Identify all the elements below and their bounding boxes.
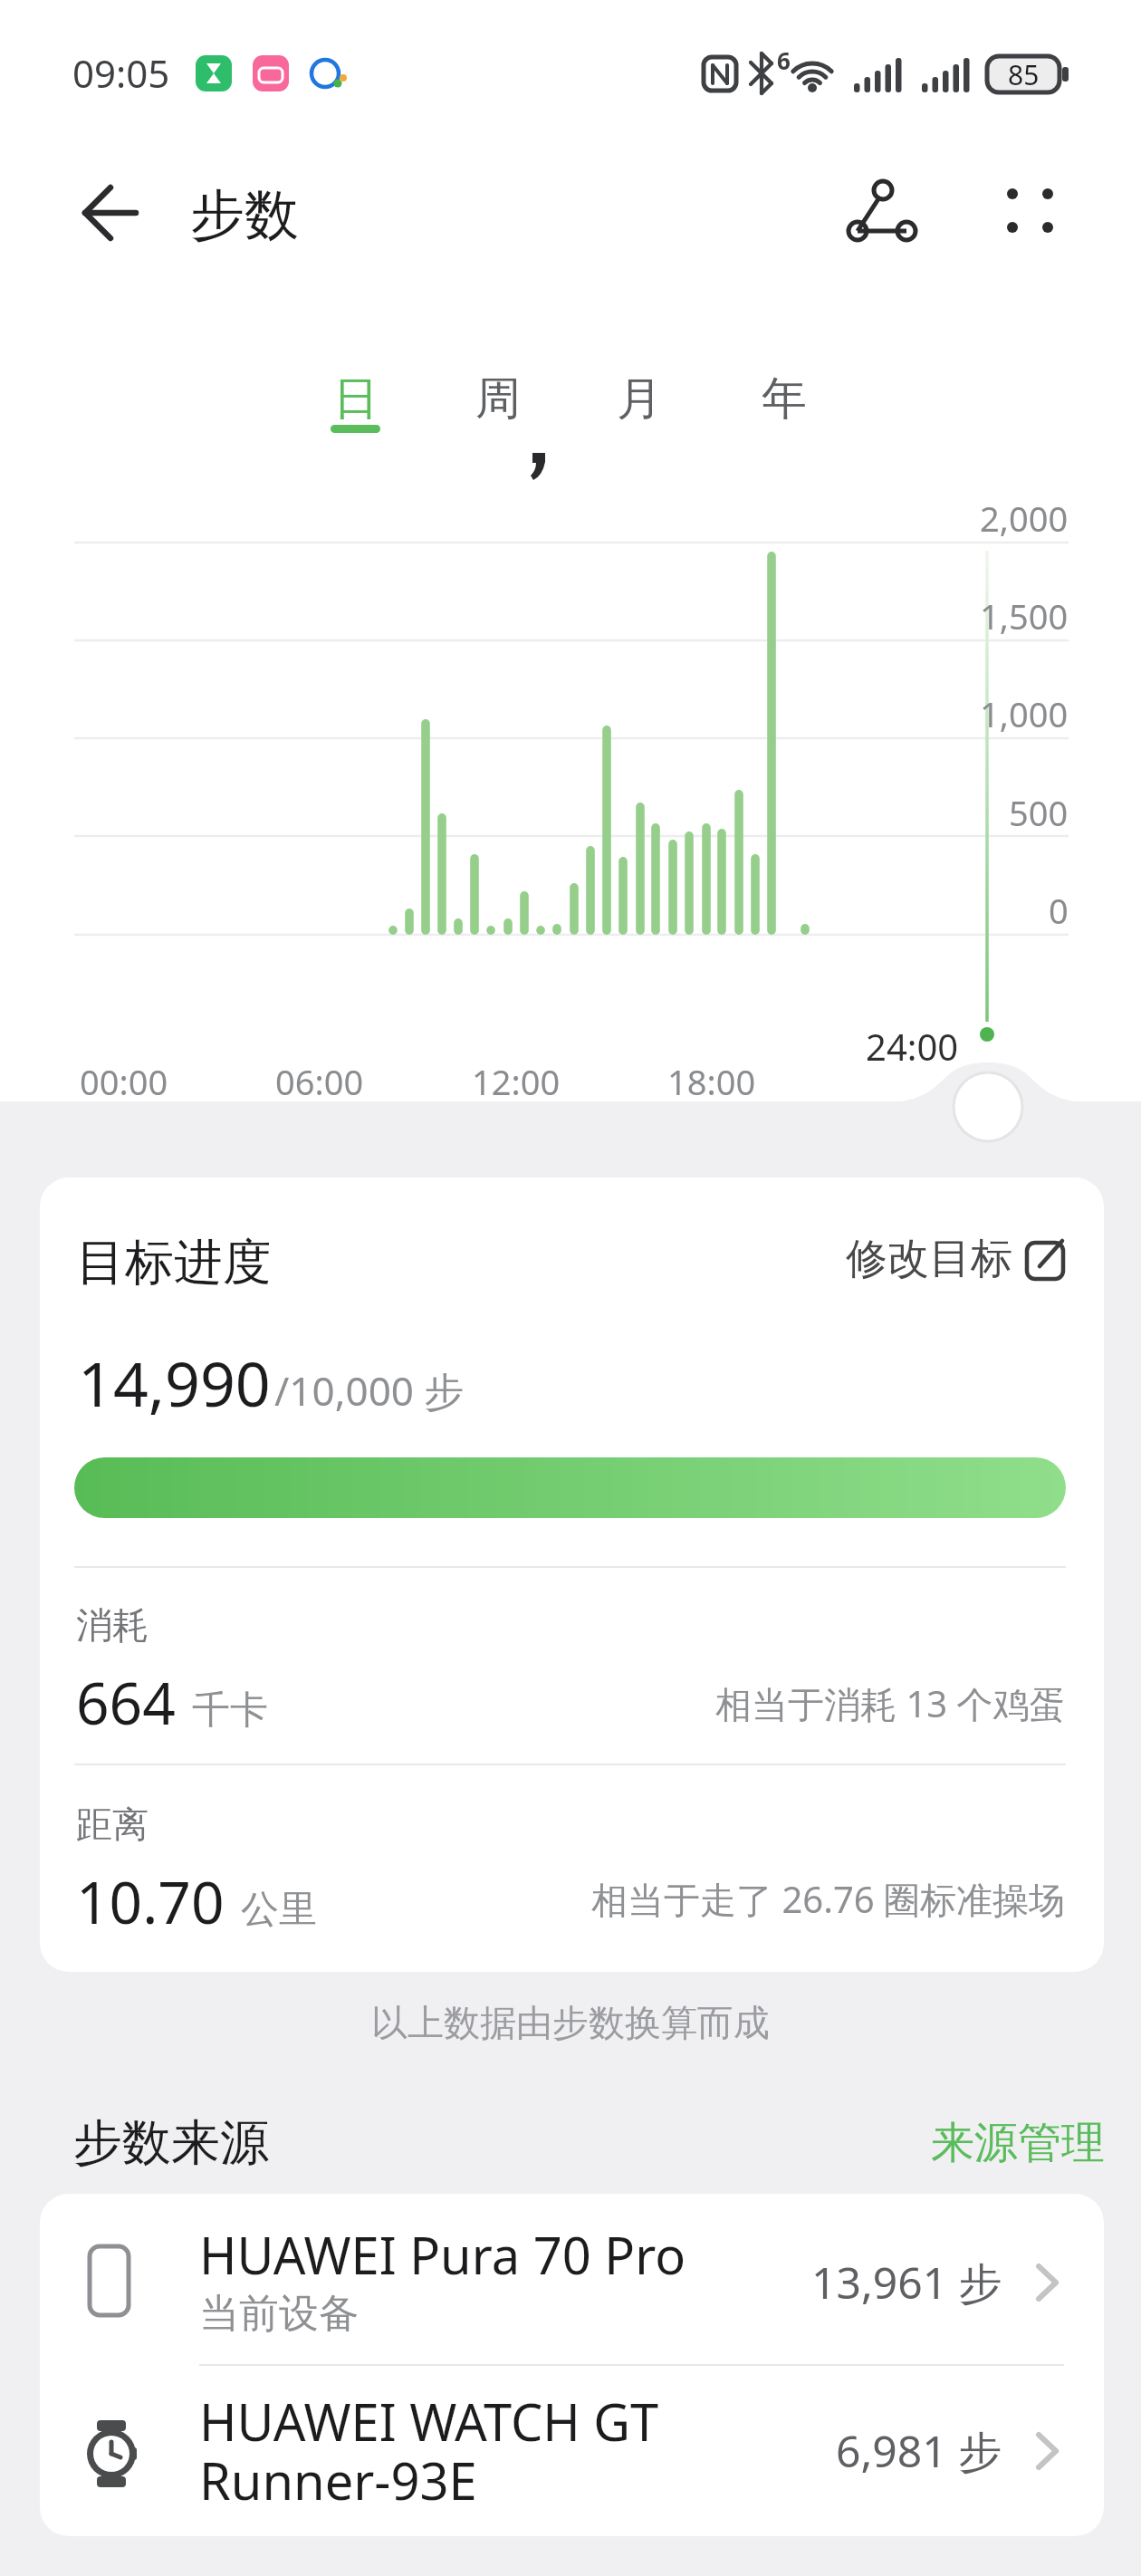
staticText: 目标进度 xyxy=(76,1232,272,1293)
staticText: HUAWEI Pura 70 Pro xyxy=(199,2220,686,2289)
button[interactable] xyxy=(40,2194,1104,2365)
staticText: 18:00 xyxy=(667,1058,756,1105)
staticText: /10,000 步 xyxy=(274,1363,465,1418)
staticText: Runner-93E xyxy=(199,2446,477,2514)
staticText: 06:00 xyxy=(275,1058,364,1105)
staticText: 13,961 步 xyxy=(811,2253,1002,2312)
staticText: 0 xyxy=(1049,887,1069,934)
button[interactable] xyxy=(833,172,924,254)
staticText: 以上数据由步数换算而成 xyxy=(371,2000,770,2045)
staticText: 14,990 xyxy=(78,1341,271,1425)
staticText: 公里 xyxy=(241,1886,317,1934)
staticText: 00:00 xyxy=(80,1058,168,1105)
button[interactable]: 年 xyxy=(727,353,840,444)
staticText: 09:05 xyxy=(72,47,170,99)
staticText: 当前设备 xyxy=(199,2289,359,2339)
staticText: 1,000 xyxy=(980,690,1069,737)
staticText: 85 xyxy=(1008,56,1040,93)
staticText: 来源管理 xyxy=(931,2116,1105,2170)
button[interactable] xyxy=(40,2365,1104,2536)
staticText: 修改目标 xyxy=(846,1233,1012,1285)
staticText: HUAWEI WATCH GT xyxy=(199,2387,659,2456)
staticText: 1,500 xyxy=(980,592,1069,639)
button[interactable] xyxy=(63,181,154,254)
staticText: 6 xyxy=(777,44,791,76)
staticText: 步数来源 xyxy=(73,2112,269,2174)
staticText: 年 xyxy=(762,370,807,428)
button[interactable]: 来源管理 xyxy=(896,2110,1105,2176)
staticText: 664 xyxy=(76,1663,176,1742)
staticText: 相当于走了 26.76 圈标准操场 xyxy=(591,1874,1066,1924)
staticText: 周 xyxy=(475,370,521,428)
staticText: 10.70 xyxy=(76,1862,225,1941)
staticText: 相当于消耗 13 个鸡蛋 xyxy=(715,1678,1066,1728)
button[interactable] xyxy=(992,172,1073,254)
staticText: 消耗 xyxy=(76,1602,149,1648)
staticText: 千卡 xyxy=(192,1687,268,1735)
button[interactable]: 月 xyxy=(582,353,695,444)
staticText: 500 xyxy=(1009,789,1069,836)
staticText: 距离 xyxy=(76,1802,149,1847)
button[interactable]: 修改目标 xyxy=(786,1227,1067,1291)
staticText: 月 xyxy=(617,370,662,428)
staticText: 步数 xyxy=(190,181,299,250)
button[interactable]: 周 xyxy=(441,353,554,444)
staticText: 6,981 步 xyxy=(836,2421,1002,2481)
staticText: 日 xyxy=(333,370,379,428)
button[interactable]: 日 xyxy=(299,353,412,444)
staticText: 24:00 xyxy=(866,1022,959,1071)
staticText: 12:00 xyxy=(472,1058,561,1105)
staticText: 2,000 xyxy=(980,495,1069,542)
